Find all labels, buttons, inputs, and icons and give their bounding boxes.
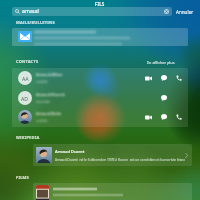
staticText: FILMS [16, 175, 29, 180]
button[interactable]: arnaud [12, 7, 172, 16]
staticText: AA [22, 75, 29, 82]
button[interactable]: Annuler [176, 9, 194, 15]
button[interactable]: Appel vidéo [145, 115, 152, 120]
staticText: CONTACTS [16, 59, 39, 64]
button[interactable] [33, 183, 192, 200]
staticText: Arnaud Ducret [55, 149, 85, 155]
staticText: WIKIPEDIA [16, 135, 40, 140]
button[interactable]: Message [161, 75, 167, 81]
button[interactable]: Effacer [164, 9, 169, 14]
staticText: Arnaud Ducret, né le 6 décembre 1978 à R… [55, 157, 185, 161]
staticText: arnaud [22, 8, 39, 15]
staticText: FILS [95, 1, 105, 7]
staticText: Arnaud Belin [36, 111, 62, 117]
staticText: MAILS/BULLETINS [16, 20, 55, 25]
button[interactable]: Appel vidéo [145, 76, 152, 81]
button[interactable]: Appeler [176, 114, 182, 120]
staticText: Arnaud Alline [36, 72, 63, 78]
staticText: mobile [36, 118, 48, 123]
button[interactable]: En afficher plus [147, 60, 175, 65]
staticText: mobile [36, 79, 48, 84]
button[interactable]: Message [161, 95, 167, 101]
staticText: domicile [36, 99, 51, 104]
button[interactable]: AD [12, 88, 188, 108]
button[interactable]: Arnaud Ducret [33, 144, 192, 166]
staticText: Arnaud Ducret [36, 92, 65, 98]
button[interactable]: AA [12, 68, 188, 88]
button[interactable]: Arnaud Belin [12, 107, 188, 127]
button[interactable] [12, 28, 188, 46]
button[interactable]: Message [161, 114, 167, 120]
staticText: AD [21, 95, 29, 102]
button[interactable]: Appeler [176, 75, 182, 81]
